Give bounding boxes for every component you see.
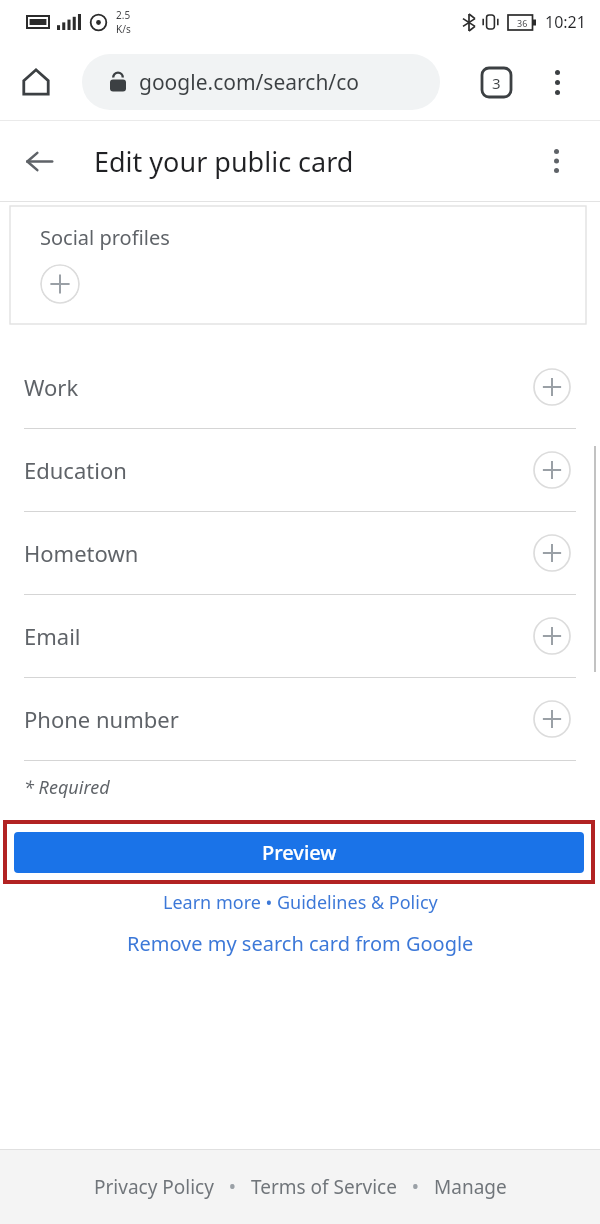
button[interactable]: Email [0, 595, 600, 678]
button[interactable]: Remove my search card from Google [127, 930, 474, 957]
staticText: Edit your public card [94, 143, 354, 180]
button[interactable]: Learn more • Guidelines & Policy [163, 890, 438, 915]
button[interactable]: Terms of Service [251, 1174, 397, 1200]
staticText: Work [24, 372, 79, 402]
button[interactable]: Phone number [0, 678, 600, 761]
button[interactable]: Home [11, 57, 61, 107]
staticText: Education [24, 455, 127, 485]
staticText: 2.5 [116, 8, 131, 22]
button[interactable]: More options [534, 59, 580, 105]
staticText: Email [24, 621, 81, 651]
staticText: Preview [262, 839, 337, 866]
button[interactable]: Manage [434, 1174, 507, 1200]
staticText: 3 [492, 73, 501, 93]
staticText: Phone number [24, 704, 179, 734]
button[interactable]: Privacy Policy [94, 1174, 214, 1200]
staticText: Hometown [24, 538, 139, 568]
staticText: • [397, 1174, 434, 1200]
button[interactable]: google.com/search/co [82, 54, 440, 110]
button[interactable]: Add social profile [40, 264, 80, 304]
button[interactable]: Work [0, 346, 600, 429]
button[interactable]: Preview [14, 832, 584, 873]
button[interactable]: Education [0, 429, 600, 512]
staticText: Social profiles [40, 224, 170, 251]
button[interactable]: Tabs, 3 open [472, 58, 520, 106]
staticText: 10:21 [545, 11, 586, 33]
staticText: • [214, 1174, 251, 1200]
staticText: K/s [116, 22, 131, 36]
button[interactable]: Back [13, 135, 65, 187]
button[interactable]: More options [533, 138, 579, 184]
staticText: * Required [24, 775, 110, 800]
staticText: google.com/search/co [139, 68, 359, 97]
staticText: 36 [517, 17, 528, 29]
button[interactable]: Hometown [0, 512, 600, 595]
